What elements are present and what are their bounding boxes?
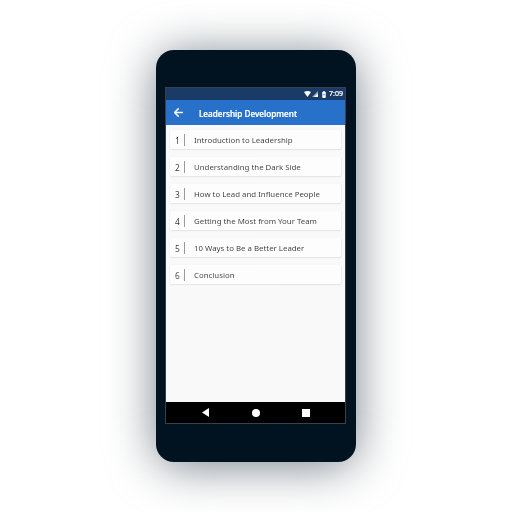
staticText: 1	[175, 135, 180, 146]
button[interactable]: 1	[170, 130, 341, 149]
button[interactable]: 4	[170, 211, 341, 230]
staticText: Conclusion	[194, 270, 235, 281]
button[interactable]: Navigate up	[166, 100, 191, 125]
staticText: Understanding the Dark Side	[194, 162, 301, 173]
staticText: 2	[175, 162, 180, 173]
button[interactable]: 5	[170, 238, 341, 257]
button[interactable]: Recent apps	[295, 402, 316, 423]
button[interactable]: 3	[170, 184, 341, 203]
staticText: How to Lead and Influence People	[194, 189, 320, 200]
staticText: 7:09	[329, 89, 343, 99]
staticText: Introduction to Leadership	[194, 135, 293, 146]
button[interactable]: Back	[195, 402, 216, 423]
staticText: 3	[175, 189, 180, 200]
staticText: 4	[175, 216, 180, 227]
button[interactable]: 6	[170, 265, 341, 284]
staticText: Getting the Most from Your Team	[194, 216, 317, 227]
button[interactable]: 2	[170, 157, 341, 176]
staticText: 10 Ways to Be a Better Leader	[194, 243, 305, 254]
staticText: Leadership Development	[199, 108, 298, 119]
staticText: 6	[175, 270, 180, 281]
button[interactable]: Home	[245, 402, 266, 423]
staticText: 5	[175, 243, 180, 254]
